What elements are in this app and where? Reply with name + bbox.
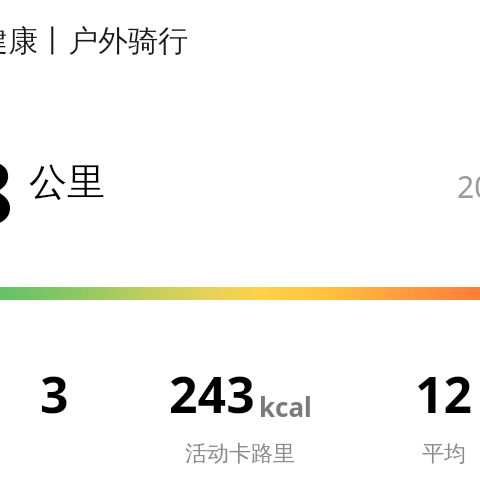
staticText: 243 (169, 360, 255, 428)
button[interactable]: 8 (0, 130, 480, 250)
button[interactable]: 健康丨户外骑行 (0, 0, 480, 72)
staticText: 公里 (29, 158, 105, 206)
staticText: kcal (259, 389, 312, 424)
staticText: 12 (415, 360, 473, 428)
button[interactable]: 12 平均 (364, 360, 480, 468)
staticText: 20 (457, 166, 480, 207)
staticText: 8 (0, 132, 14, 249)
staticText: 活动卡路里 (185, 440, 295, 468)
staticText: 平均 (422, 440, 466, 468)
button[interactable]: 243 kcal 活动卡路里 (160, 360, 320, 468)
button[interactable]: 3 (0, 360, 134, 440)
staticText: 3 (40, 360, 69, 428)
staticText: 健康丨户外骑行 (0, 22, 188, 60)
